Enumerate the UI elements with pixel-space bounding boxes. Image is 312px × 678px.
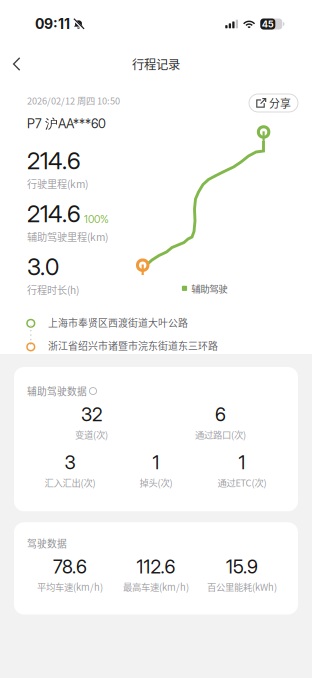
staticText: 15.9: [226, 555, 258, 578]
staticText: P7 沪AA***60: [27, 116, 106, 132]
staticText: 辅助驾驶: [191, 281, 227, 295]
staticText: 辅助驾驶里程(km): [27, 229, 108, 244]
staticText: 驾驶数据: [27, 536, 67, 550]
staticText: 平均车速(km/h): [37, 580, 103, 593]
staticText: 行程记录: [132, 55, 180, 73]
staticText: 行程时长(h): [27, 282, 79, 297]
staticText: 214.6: [27, 200, 81, 228]
staticText: 行驶里程(km): [27, 176, 88, 191]
staticText: 汇入汇出(次): [44, 476, 95, 489]
staticText: 通过ETC(次): [217, 476, 266, 489]
staticText: 通过路口(次): [195, 428, 246, 441]
staticText: 45: [262, 18, 274, 30]
staticText: 变道(次): [75, 428, 108, 441]
button[interactable]: Back: [0, 48, 33, 80]
staticText: 09:11: [35, 15, 70, 32]
staticText: 上海市奉贤区西渡街道大叶公路: [48, 315, 188, 330]
staticText: 78.6: [53, 555, 87, 578]
staticText: 214.6: [27, 147, 81, 175]
staticText: 辅助驾驶数据: [27, 384, 87, 398]
staticText: 2026/02/12 周四 10:50: [27, 94, 120, 107]
staticText: 6: [215, 403, 226, 426]
staticText: 3: [64, 451, 75, 474]
staticText: 浙江省绍兴市诸暨市浣东街道东三环路: [48, 338, 218, 353]
button[interactable]: 分享: [249, 94, 298, 112]
staticText: 分享: [269, 95, 291, 111]
staticText: 1: [152, 451, 159, 474]
staticText: 100%: [84, 213, 109, 225]
staticText: 1: [238, 451, 245, 474]
staticText: 3.0: [27, 253, 59, 281]
staticText: 百公里能耗(kWh): [207, 580, 277, 593]
staticText: 32: [81, 403, 102, 426]
staticText: 最高车速(km/h): [123, 580, 189, 593]
staticText: 掉头(次): [139, 476, 172, 489]
staticText: 112.6: [136, 555, 175, 578]
